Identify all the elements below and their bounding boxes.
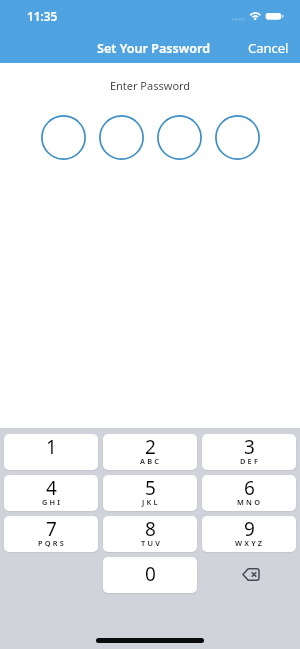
staticText: ABC	[140, 456, 162, 466]
staticText: GHI	[42, 497, 63, 507]
staticText: TUV	[141, 538, 162, 548]
staticText: 6	[244, 475, 255, 501]
button[interactable]: 1	[4, 434, 98, 470]
staticText: 0	[145, 561, 156, 587]
button[interactable]: 6	[202, 475, 296, 511]
button[interactable]: 5	[103, 475, 197, 511]
staticText: 8	[145, 516, 156, 542]
staticText: 11:35	[27, 8, 58, 24]
staticText: JKL	[142, 497, 160, 507]
button[interactable]: 3	[202, 434, 296, 470]
button[interactable]: 2	[103, 434, 197, 470]
button[interactable]: Cancel	[237, 26, 300, 63]
button[interactable]: 8	[103, 516, 197, 552]
button[interactable]: 0	[103, 557, 197, 593]
staticText: PQRS	[38, 538, 66, 548]
button[interactable]: 4	[4, 475, 98, 511]
staticText: 7	[46, 516, 57, 542]
staticText: DEF	[240, 456, 261, 466]
staticText: 3	[244, 434, 255, 460]
staticText: 4	[46, 475, 57, 501]
button[interactable]: 9	[202, 516, 296, 552]
staticText: 1	[46, 434, 57, 460]
staticText: 5	[145, 475, 156, 501]
staticText: WXYZ	[235, 538, 265, 548]
button[interactable]: Delete	[197, 557, 296, 593]
staticText: Set Your Password	[97, 40, 211, 57]
staticText: Enter Password	[0, 78, 300, 93]
staticText: 2	[145, 434, 156, 460]
staticText: Cancel	[248, 39, 289, 57]
staticText: MNO	[237, 497, 263, 507]
staticText: 9	[244, 516, 255, 542]
button[interactable]: 7	[4, 516, 98, 552]
